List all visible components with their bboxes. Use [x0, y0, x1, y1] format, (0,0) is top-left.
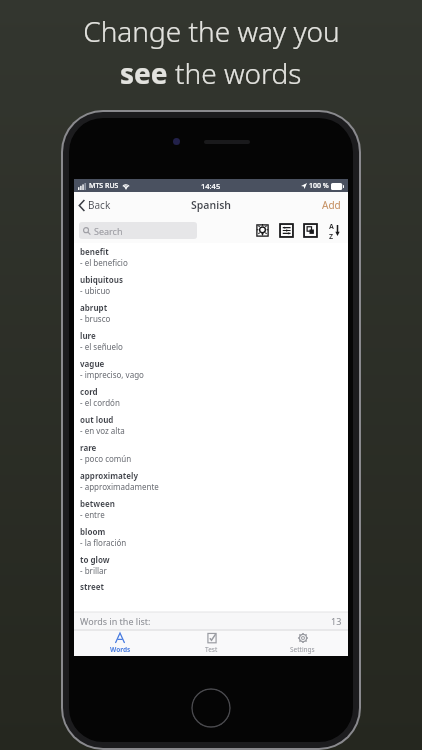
staticText: - ubicuo [80, 285, 111, 296]
staticText: - el señuelo [80, 341, 123, 352]
staticText: Search [94, 225, 123, 237]
staticText: vague [80, 358, 105, 369]
button[interactable]: Back [74, 194, 117, 216]
staticText: rare [80, 442, 97, 453]
staticText: Words in the list: [80, 615, 151, 627]
staticText: bloom [80, 526, 106, 537]
staticText: cord [80, 386, 98, 397]
staticText: A [329, 222, 334, 232]
staticText: - en voz alta [80, 425, 125, 436]
button[interactable]: rare [74, 439, 348, 467]
staticText: Words [110, 645, 131, 654]
staticText: Spanish [191, 198, 232, 212]
staticText: abrupt [80, 302, 108, 313]
button[interactable]: Words [74, 630, 166, 656]
button[interactable]: bloom [74, 523, 348, 551]
staticText: - approximadamente [80, 481, 159, 492]
staticText: lure [80, 330, 96, 341]
button[interactable]: lure [74, 327, 348, 355]
button[interactable]: Flip cards [302, 222, 319, 239]
button[interactable]: Search [79, 222, 197, 239]
staticText: Test [205, 645, 218, 654]
staticText: approximately [80, 470, 138, 481]
button[interactable]: abrupt [74, 299, 348, 327]
button[interactable]: vague [74, 355, 348, 383]
staticText: Add [322, 198, 341, 212]
button[interactable]: cord [74, 383, 348, 411]
staticText: - poco común [80, 453, 132, 464]
button[interactable]: between [74, 495, 348, 523]
staticText: - la floración [80, 537, 127, 548]
button[interactable]: ubiquitous [74, 271, 348, 299]
staticText: street [80, 581, 104, 592]
staticText: Back [88, 198, 111, 212]
button[interactable]: Add [315, 194, 348, 216]
button[interactable]: approximately [74, 467, 348, 495]
button[interactable]: out loud [74, 411, 348, 439]
staticText: Settings [290, 645, 315, 654]
button[interactable]: to glow [74, 551, 348, 579]
button[interactable]: Test [166, 630, 257, 656]
staticText: MTS RUS [89, 181, 119, 191]
staticText: Change the way you [83, 12, 340, 50]
staticText: between [80, 498, 115, 509]
staticText: ubiquitous [80, 274, 123, 285]
staticText: - el cordón [80, 397, 120, 408]
staticText: Z [329, 232, 334, 239]
staticText: 14:45 [201, 181, 221, 191]
staticText: - entre [80, 509, 105, 520]
button[interactable]: Settings [257, 630, 348, 656]
staticText: 100 % [309, 181, 329, 191]
staticText: out loud [80, 414, 114, 425]
staticText: - brillar [80, 565, 107, 576]
staticText: - el beneficio [80, 257, 128, 268]
staticText: to glow [80, 554, 110, 565]
button[interactable]: Shuffle words [278, 222, 295, 239]
button[interactable]: benefit [74, 243, 348, 271]
button[interactable]: Sort alphabetically [326, 222, 343, 239]
staticText: 13 [331, 615, 342, 627]
staticText: see [120, 54, 175, 92]
staticText: the words [175, 54, 302, 92]
staticText: - impreciso, vago [80, 369, 144, 380]
button[interactable]: Show hints [254, 222, 271, 239]
staticText: benefit [80, 246, 109, 257]
staticText: - brusco [80, 313, 111, 324]
